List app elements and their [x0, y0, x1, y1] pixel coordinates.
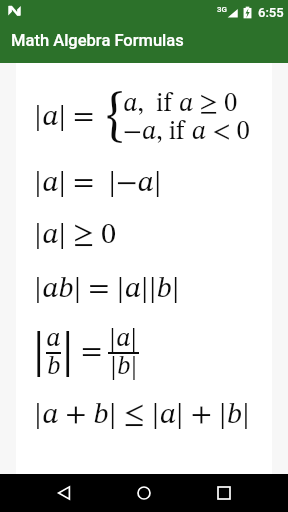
staticText: |: [32, 328, 46, 378]
staticText: 𝑏: [47, 354, 61, 380]
staticText: |: [61, 328, 75, 378]
staticText: −𝑎, if 𝑎 < 0: [123, 119, 250, 145]
staticText: Math Algebra Formulas: [11, 31, 184, 50]
staticText: =: [81, 338, 103, 368]
staticText: 3G: [217, 5, 227, 14]
button[interactable]: Back: [46, 475, 82, 511]
staticText: 𝑎: [46, 326, 61, 352]
staticText: |𝑎| = |−𝑎|: [34, 169, 162, 199]
button[interactable]: Math Algebra Formulas: [0, 24, 288, 63]
staticText: 6:55: [258, 5, 284, 20]
staticText: |𝑎 + 𝑏| ≤ |𝑎| + |𝑏|: [34, 401, 250, 431]
staticText: {: [106, 89, 125, 145]
staticText: |𝑎| ≥ 0: [34, 221, 116, 251]
staticText: |𝑎𝑏| = |𝑎||𝑏|: [34, 275, 180, 305]
staticText: |𝑏|: [110, 354, 138, 380]
staticText: |𝑎| =: [34, 103, 95, 133]
staticText: 𝑎, if 𝑎 ≥ 0: [123, 91, 238, 117]
button[interactable]: Recent apps: [206, 475, 242, 511]
button[interactable]: Home: [126, 475, 162, 511]
staticText: |𝑎|: [109, 326, 138, 352]
